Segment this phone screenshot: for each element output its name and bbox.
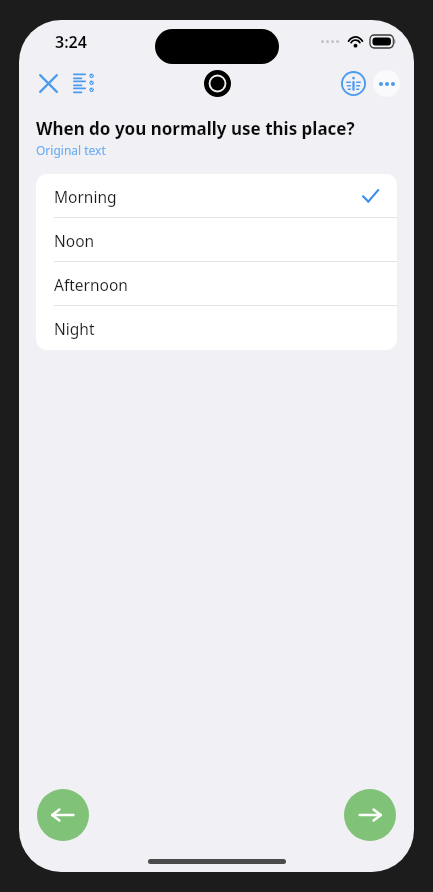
button[interactable]: Afternoon [36,262,397,306]
button[interactable]: Close [33,68,63,98]
staticText: Noon [54,230,95,251]
button[interactable]: Next [344,789,396,841]
button[interactable]: Survey list [67,67,99,99]
staticText: Night [54,318,95,339]
button[interactable]: Morning [36,174,397,218]
button[interactable]: Noon [36,218,397,262]
button[interactable]: Record [200,66,234,100]
button[interactable]: Original text [36,142,106,158]
button[interactable]: Information [337,67,369,99]
button[interactable]: Previous [37,789,89,841]
button[interactable]: More options [373,70,400,97]
staticText: Morning [54,186,117,207]
staticText: Afternoon [54,274,128,295]
staticText: 3:24 [55,31,87,53]
staticText: When do you normally use this place? [36,117,355,140]
button[interactable]: Night [36,306,397,350]
